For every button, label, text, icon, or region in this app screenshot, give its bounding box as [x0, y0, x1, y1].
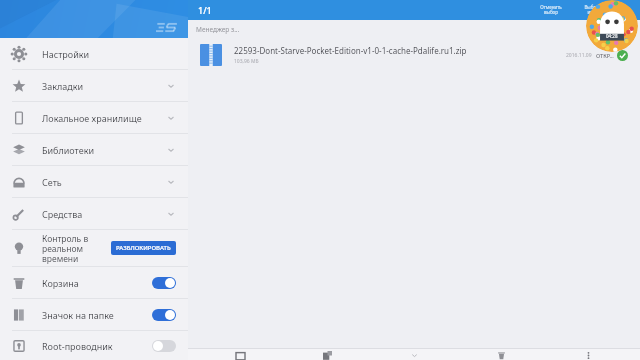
staticText: Выбрать всё инверсия: [584, 4, 612, 16]
button[interactable]: Корзина: [0, 267, 188, 298]
button[interactable]: Закладки: [0, 70, 188, 101]
button[interactable]: Выбрано: [617, 50, 628, 61]
button[interactable]: 22593-Dont-Starve-Pocket-Edition-v1-0-1-…: [188, 38, 640, 72]
staticText: Настройки: [42, 48, 176, 60]
staticText: 1/1: [198, 4, 212, 16]
button[interactable]: Вид: [205, 349, 275, 360]
staticText: Значок на папке: [42, 309, 152, 321]
staticText: РАЗБЛОКИРОВАТЬ: [116, 244, 171, 252]
staticText: Локальное хранилище: [42, 112, 166, 124]
button[interactable]: Плавающий помощник: [586, 0, 638, 52]
button[interactable]: Локальное хранилище: [0, 102, 188, 133]
button[interactable]: Ещё: [379, 349, 449, 360]
staticText: Отменить выбор: [540, 4, 562, 16]
button[interactable]: Корзина: [152, 277, 176, 289]
button[interactable]: Контроль в реальном времени: [0, 230, 188, 266]
staticText: 22593-Dont-Starve-Pocket-Edition-v1-0-1-…: [234, 45, 467, 56]
staticText: Менеджер з...: [196, 25, 240, 34]
staticText: Корзина: [42, 277, 152, 289]
button[interactable]: Сеть: [0, 166, 188, 197]
staticText: Контроль в реальном времени: [42, 233, 111, 264]
button[interactable]: Значок на папке: [0, 299, 188, 330]
button[interactable]: Настройки: [0, 38, 188, 69]
button[interactable]: Меню: [553, 349, 623, 360]
staticText: Root-проводник: [42, 340, 152, 352]
button[interactable]: Root-проводник: [152, 340, 176, 352]
staticText: 103,96 МБ: [234, 58, 259, 65]
staticText: 04:28: [606, 33, 618, 39]
button[interactable]: Средства: [0, 198, 188, 229]
staticText: ОТКР...: [596, 52, 614, 59]
button[interactable]: Отменить выбор: [538, 4, 564, 16]
button[interactable]: Библиотеки: [0, 134, 188, 165]
button[interactable]: Значок на папке: [152, 309, 176, 321]
button[interactable]: Копировать: [292, 349, 362, 360]
staticText: Закладки: [42, 80, 166, 92]
button[interactable]: Выбрать всё инверсия: [582, 4, 614, 16]
staticText: Средства: [42, 208, 166, 220]
staticText: 2016.11.09: [566, 52, 592, 59]
button[interactable]: Удалить: [466, 349, 536, 360]
button[interactable]: РАЗБЛОКИРОВАТЬ: [111, 241, 176, 255]
staticText: Сеть: [42, 176, 166, 188]
staticText: Библиотеки: [42, 144, 166, 156]
button[interactable]: Root-проводник: [0, 331, 188, 360]
